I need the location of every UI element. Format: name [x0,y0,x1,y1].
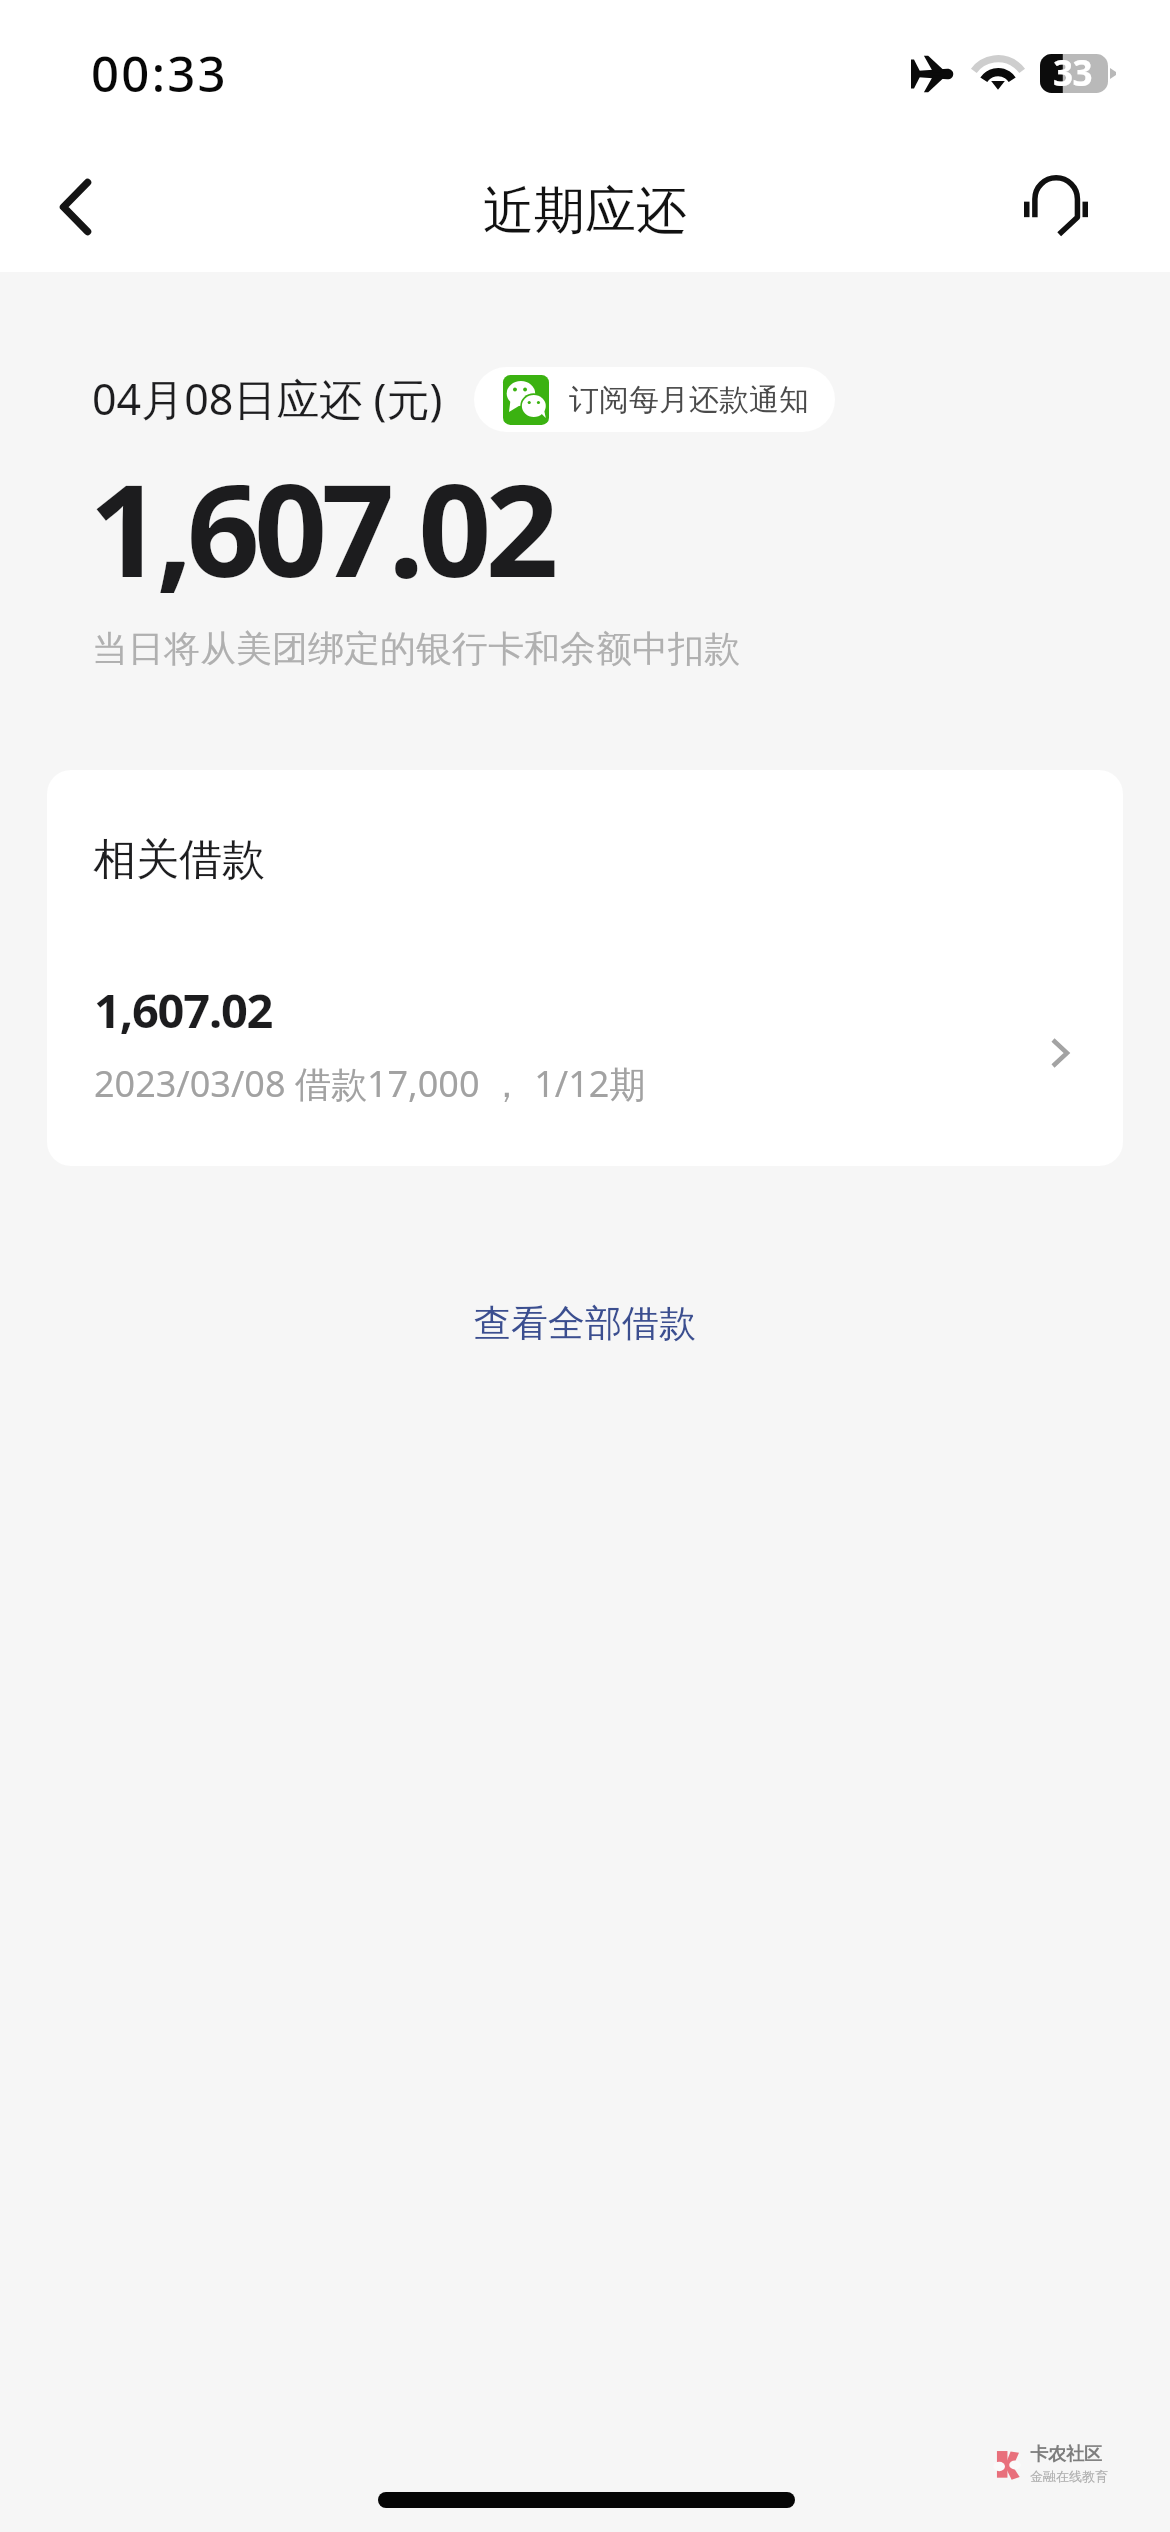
staticText: 卡农社区 [1030,2443,1102,2466]
staticText: 近期应还 [0,179,1170,243]
staticText: 查看全部借款 [474,1300,696,1347]
button[interactable]: 订阅每月还款通知 [474,367,835,432]
staticText: 04月08日应还 (元) [92,369,443,428]
button[interactable]: 1,607.02 [47,963,1123,1123]
staticText: 33 [1053,49,1093,97]
staticText: 2023/03/08 借款17,000 ， 1/12期 [94,1059,646,1108]
button[interactable]: 查看全部借款 [450,1285,720,1361]
button[interactable]: Back [19,151,131,263]
staticText: 相关借款 [93,833,265,887]
staticText: 金融在线教育 [1030,2468,1108,2484]
staticText: 00:33 [91,40,228,107]
staticText: 1,607.02 [94,978,273,1042]
staticText: 1,607.02 [89,440,553,614]
staticText: 订阅每月还款通知 [569,381,809,419]
staticText: 当日将从美团绑定的银行卡和余额中扣款 [92,626,740,671]
button[interactable]: Customer service [1000,150,1112,262]
